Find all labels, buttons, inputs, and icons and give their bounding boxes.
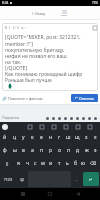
staticText: и <box>49 160 53 167</box>
button[interactable]: • <box>24 24 28 31</box>
staticText: с <box>34 160 37 167</box>
button[interactable]: Share icon <box>62 115 68 121</box>
button[interactable]: х <box>91 131 100 144</box>
button[interactable]: Share icon <box>80 115 86 121</box>
button[interactable]: ж <box>82 144 91 157</box>
button[interactable]: у <box>19 131 28 144</box>
button[interactable]: Keyboard tool <box>38 123 45 130</box>
button[interactable]: Share icon <box>56 115 62 121</box>
button[interactable]: U <box>12 24 16 31</box>
button[interactable]: г <box>55 131 64 144</box>
button[interactable]: Share icon <box>68 115 74 121</box>
button[interactable]: п <box>37 144 46 157</box>
button[interactable]: д <box>73 144 82 157</box>
button[interactable]: 🔗 <box>2 96 43 101</box>
staticText: э <box>94 147 97 154</box>
button[interactable]: л <box>64 144 73 157</box>
button[interactable]: а <box>28 144 37 157</box>
button[interactable]: в <box>19 144 28 157</box>
button[interactable]: ?123 <box>0 170 17 188</box>
staticText: ч <box>26 160 29 167</box>
button[interactable]: . <box>72 170 82 188</box>
staticText: S <box>17 25 19 30</box>
staticText: щ <box>75 134 80 141</box>
staticText: ?123 <box>4 177 13 182</box>
button[interactable]: э <box>91 144 100 157</box>
staticText: н <box>49 134 53 141</box>
staticText: д <box>76 147 80 154</box>
button[interactable]: ↩ <box>71 94 98 102</box>
button[interactable]: Share icon <box>50 115 56 121</box>
button[interactable]: к <box>28 131 37 144</box>
button[interactable]: Backspace <box>87 157 100 170</box>
button[interactable]: щ <box>73 131 82 144</box>
staticText: Ответить <box>79 96 95 101</box>
button[interactable]: I <box>8 24 12 31</box>
staticText: Помогите с файлом <box>8 96 43 101</box>
button[interactable]: м <box>39 157 47 170</box>
staticText: . <box>76 177 78 182</box>
staticText: 8:34 <box>2 1 9 5</box>
button[interactable]: Home <box>45 189 55 199</box>
staticText: т <box>58 160 61 167</box>
staticText: [QUOTE="MIKER, post: 3212321, member:​1"… <box>5 34 96 83</box>
staticText: ж <box>85 147 89 154</box>
staticText: ш <box>66 134 71 141</box>
staticText: з <box>85 134 88 141</box>
button[interactable]: з <box>82 131 91 144</box>
button[interactable]: й <box>0 131 10 144</box>
button[interactable]: Keyboard tool <box>26 123 33 130</box>
button[interactable]: S <box>16 24 20 31</box>
button[interactable]: е <box>37 131 46 144</box>
staticText: Подписка <box>2 115 19 120</box>
button[interactable]: ‹ <box>31 8 47 19</box>
button[interactable]: н <box>46 131 55 144</box>
button[interactable]: ь <box>63 157 71 170</box>
button[interactable]: Enter <box>83 172 99 186</box>
button[interactable]: Keyboard tool <box>62 123 69 130</box>
staticText: ю <box>81 160 85 167</box>
button[interactable]: я <box>14 157 23 170</box>
staticText: ↩ <box>75 96 78 100</box>
button[interactable]: ы <box>10 144 19 157</box>
button[interactable]: Share icon <box>86 115 92 121</box>
staticText: л <box>67 147 70 154</box>
button[interactable]: ц <box>10 131 19 144</box>
button[interactable]: Image <box>92 24 97 31</box>
button[interactable]: B <box>4 24 8 31</box>
button[interactable]: Share icon <box>92 115 98 121</box>
staticText: р <box>49 147 53 154</box>
button[interactable]: Google <box>2 124 8 130</box>
staticText: I <box>9 25 11 30</box>
button[interactable]: и <box>47 157 55 170</box>
button[interactable]: ш <box>64 131 73 144</box>
button[interactable]: с <box>31 157 39 170</box>
button[interactable]: р <box>46 144 55 157</box>
staticText: ц <box>13 134 17 141</box>
staticText: ⇧ <box>5 161 10 167</box>
button[interactable]: Shift <box>0 157 14 170</box>
button[interactable]: б <box>71 157 79 170</box>
button[interactable]: ф <box>0 144 10 157</box>
button[interactable]: о <box>55 144 64 157</box>
button[interactable]: ч <box>23 157 31 170</box>
button[interactable]: ≡ <box>20 24 24 31</box>
button[interactable]: Recents <box>18 189 28 199</box>
button[interactable]: Back <box>73 189 83 199</box>
staticText: ≡ <box>21 26 24 30</box>
button[interactable]: Keyboard tool <box>50 123 57 130</box>
button[interactable]: Share icon <box>44 115 50 121</box>
button[interactable]: Keyboard tool <box>74 123 81 130</box>
staticText: 🔗 <box>2 96 7 101</box>
button[interactable]: Emoji <box>17 170 27 188</box>
button[interactable]: ю <box>79 157 87 170</box>
button[interactable]: Keyboard tool <box>86 123 93 130</box>
staticText: ф <box>3 147 7 154</box>
button[interactable]: Share icon <box>74 115 80 121</box>
staticText: г <box>58 134 61 141</box>
staticText: у <box>22 134 25 141</box>
button[interactable]: т <box>55 157 63 170</box>
staticText: Назад <box>35 11 46 16</box>
